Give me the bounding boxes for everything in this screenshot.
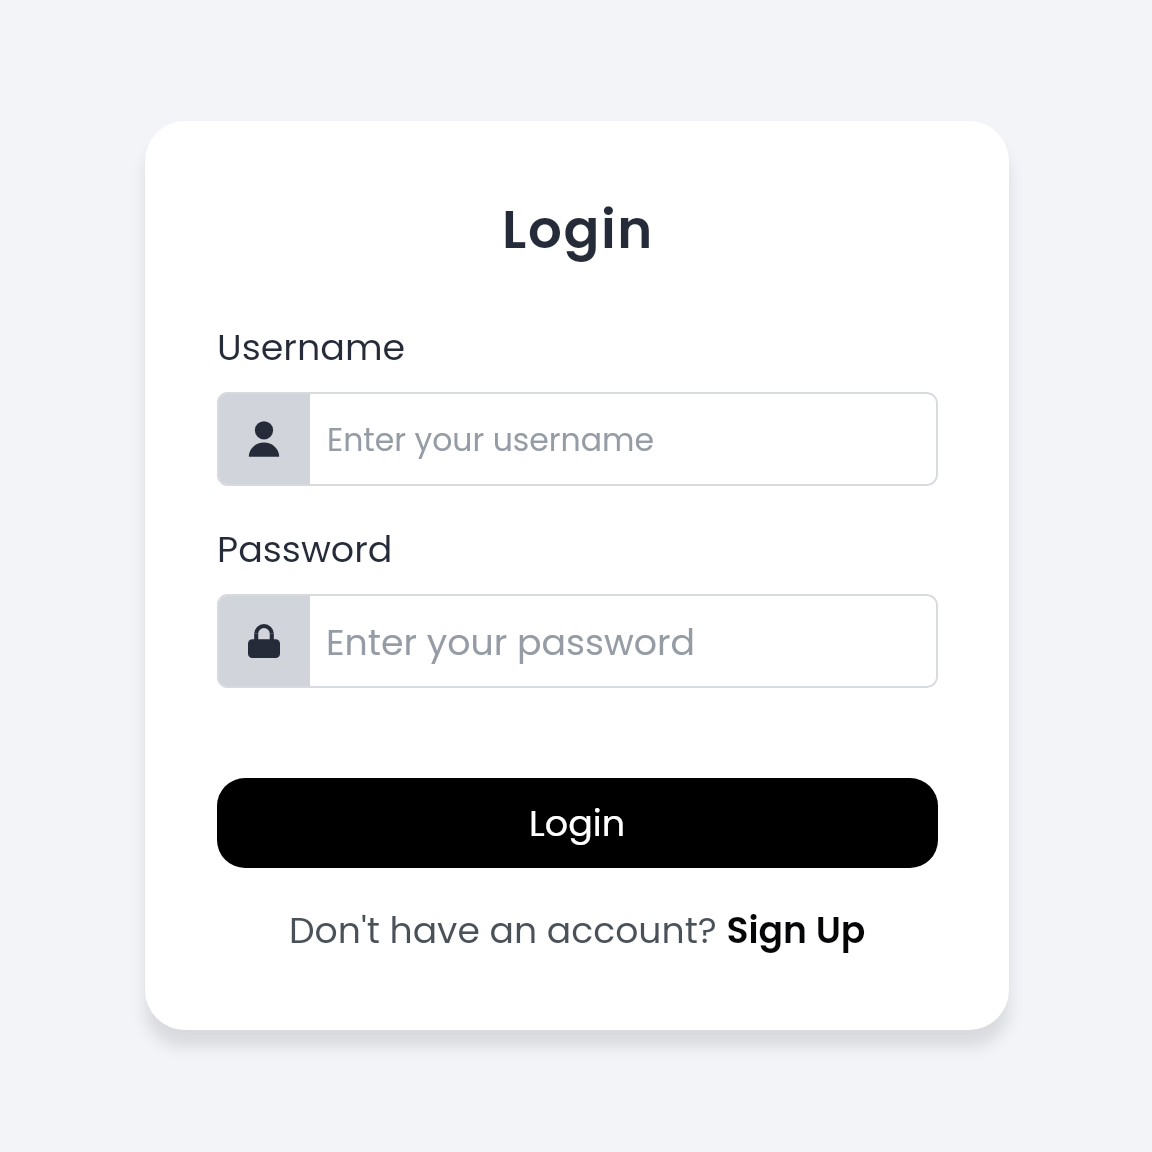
staticText: Password bbox=[217, 524, 393, 575]
other: Password bbox=[248, 624, 280, 658]
button[interactable]: Don't have an account? Sign Up bbox=[289, 905, 866, 956]
button[interactable]: Password bbox=[217, 594, 938, 688]
staticText: Enter your password bbox=[326, 617, 695, 668]
staticText: Login bbox=[146, 192, 1009, 266]
other: Username bbox=[248, 421, 280, 457]
staticText: Login bbox=[529, 798, 626, 849]
button[interactable]: Login bbox=[217, 778, 938, 868]
button[interactable]: Username bbox=[217, 392, 938, 486]
staticText: Username bbox=[217, 322, 406, 373]
staticText: Enter your username bbox=[327, 418, 655, 462]
